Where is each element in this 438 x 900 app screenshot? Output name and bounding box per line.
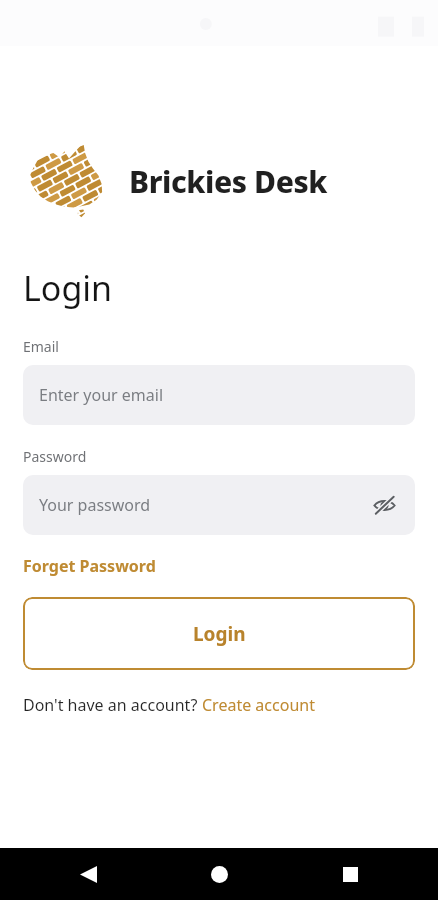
staticText: Login	[23, 265, 113, 311]
staticText: Forget Password	[23, 555, 156, 577]
staticText: Email	[23, 337, 59, 356]
staticText: Login	[193, 621, 246, 647]
button[interactable]: Recent apps	[328, 852, 372, 896]
staticText: Don't have an account?	[23, 694, 202, 716]
button[interactable]: Login	[23, 597, 415, 670]
staticText: Your password	[39, 494, 151, 516]
button[interactable]: Create account	[202, 694, 315, 716]
button[interactable]: Show password	[367, 488, 401, 522]
button[interactable]: Enter your email	[23, 365, 415, 425]
staticText: Password	[23, 447, 87, 466]
staticText: Create account	[202, 694, 315, 716]
button[interactable]: Your password	[23, 475, 415, 535]
button[interactable]: Home	[197, 852, 241, 896]
button[interactable]: Back	[66, 852, 110, 896]
button[interactable]: Forget Password	[23, 555, 156, 577]
staticText: Enter your email	[39, 384, 164, 406]
staticText: Brickies Desk	[129, 161, 328, 202]
